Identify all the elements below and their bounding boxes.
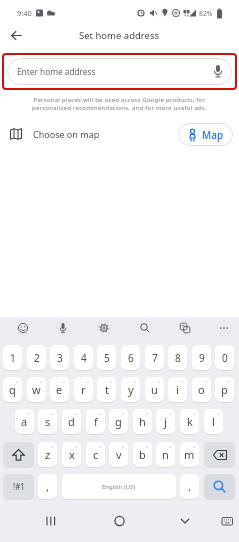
- staticText: 7: [152, 351, 158, 365]
- button[interactable]: [3, 442, 34, 467]
- staticText: t: [105, 382, 109, 397]
- button[interactable]: !#1: [3, 474, 34, 499]
- staticText: m: [184, 447, 195, 462]
- button[interactable]: f: [86, 409, 105, 434]
- button[interactable]: x: [62, 442, 81, 467]
- staticText: i: [176, 382, 179, 397]
- staticText: c: [93, 447, 99, 462]
- button[interactable]: 8: [168, 345, 187, 370]
- button[interactable]: [79, 505, 159, 542]
- button[interactable]: [176, 319, 195, 338]
- button[interactable]: w: [27, 377, 46, 402]
- staticText: y: [128, 382, 134, 397]
- button[interactable]: n: [156, 442, 175, 467]
- staticText: 0: [222, 351, 228, 365]
- button[interactable]: [136, 319, 155, 338]
- button[interactable]: t: [97, 377, 116, 402]
- staticText: d: [68, 414, 75, 429]
- button[interactable]: ,: [38, 474, 57, 499]
- button[interactable]: 7: [145, 345, 164, 370]
- button[interactable]: 4: [74, 345, 93, 370]
- button[interactable]: 2: [27, 345, 46, 370]
- staticText: 9: [199, 351, 205, 365]
- button[interactable]: [159, 505, 239, 542]
- staticText: l: [212, 414, 215, 429]
- staticText: k: [187, 414, 193, 429]
- button[interactable]: v: [109, 442, 128, 467]
- staticText: 4: [81, 351, 87, 365]
- button[interactable]: r: [74, 377, 93, 402]
- button[interactable]: [54, 319, 73, 338]
- staticText: Enter home address: [17, 66, 96, 77]
- button[interactable]: 6: [121, 345, 140, 370]
- staticText: 3: [57, 351, 63, 365]
- staticText: Choose on map: [33, 128, 100, 140]
- button[interactable]: k: [180, 409, 199, 434]
- staticText: 1: [10, 351, 16, 365]
- button[interactable]: l: [204, 409, 223, 434]
- button[interactable]: h: [133, 409, 152, 434]
- button[interactable]: Choose on map: [0, 118, 239, 150]
- button[interactable]: English (US): [62, 474, 176, 499]
- button[interactable]: p: [215, 377, 234, 402]
- button[interactable]: [204, 474, 235, 499]
- staticText: a: [21, 414, 28, 429]
- button[interactable]: 1: [3, 345, 22, 370]
- button[interactable]: y: [121, 377, 140, 402]
- staticText: z: [45, 447, 51, 462]
- button[interactable]: [14, 319, 33, 338]
- staticText: 2: [34, 351, 40, 365]
- button[interactable]: z: [38, 442, 57, 467]
- staticText: 9:40: [17, 8, 32, 18]
- button[interactable]: d: [62, 409, 81, 434]
- staticText: u: [151, 382, 158, 397]
- button[interactable]: m: [180, 442, 199, 467]
- staticText: s: [45, 414, 51, 429]
- staticText: ,: [46, 479, 49, 494]
- staticText: 82%: [199, 9, 213, 18]
- staticText: f: [94, 414, 98, 429]
- staticText: h: [139, 414, 146, 429]
- staticText: x: [69, 447, 75, 462]
- staticText: 8: [175, 351, 181, 365]
- button[interactable]: Map: [178, 123, 233, 146]
- button[interactable]: j: [156, 409, 175, 434]
- staticText: n: [162, 447, 169, 462]
- staticText: !#1: [13, 481, 25, 492]
- staticText: 6: [128, 351, 134, 365]
- staticText: Set home address: [79, 29, 160, 42]
- staticText: j: [164, 414, 167, 429]
- button[interactable]: e: [50, 377, 69, 402]
- staticText: o: [198, 382, 205, 397]
- button[interactable]: 5: [97, 345, 116, 370]
- button[interactable]: a: [15, 409, 34, 434]
- button[interactable]: Enter home address: [7, 58, 232, 85]
- staticText: q: [9, 382, 16, 397]
- button[interactable]: g: [109, 409, 128, 434]
- staticText: Personal places will be used across Goog…: [0, 96, 239, 104]
- button[interactable]: 0: [215, 345, 234, 370]
- button[interactable]: [95, 319, 114, 338]
- button[interactable]: .: [180, 474, 199, 499]
- button[interactable]: [0, 505, 79, 542]
- button[interactable]: s: [38, 409, 57, 434]
- button[interactable]: [215, 319, 234, 338]
- button[interactable]: 3: [50, 345, 69, 370]
- button[interactable]: 9: [192, 345, 211, 370]
- button[interactable]: b: [133, 442, 152, 467]
- staticText: .: [188, 479, 191, 494]
- button[interactable]: o: [192, 377, 211, 402]
- button[interactable]: q: [3, 377, 22, 402]
- staticText: English (US): [102, 483, 136, 491]
- staticText: Map: [202, 128, 224, 142]
- button[interactable]: u: [145, 377, 164, 402]
- button[interactable]: [4, 23, 28, 47]
- staticText: p: [221, 382, 228, 397]
- staticText: 5: [104, 351, 110, 365]
- button[interactable]: c: [86, 442, 105, 467]
- button[interactable]: [204, 442, 235, 467]
- staticText: e: [56, 382, 63, 397]
- button[interactable]: i: [168, 377, 187, 402]
- staticText: w: [32, 382, 41, 397]
- staticText: b: [139, 447, 146, 462]
